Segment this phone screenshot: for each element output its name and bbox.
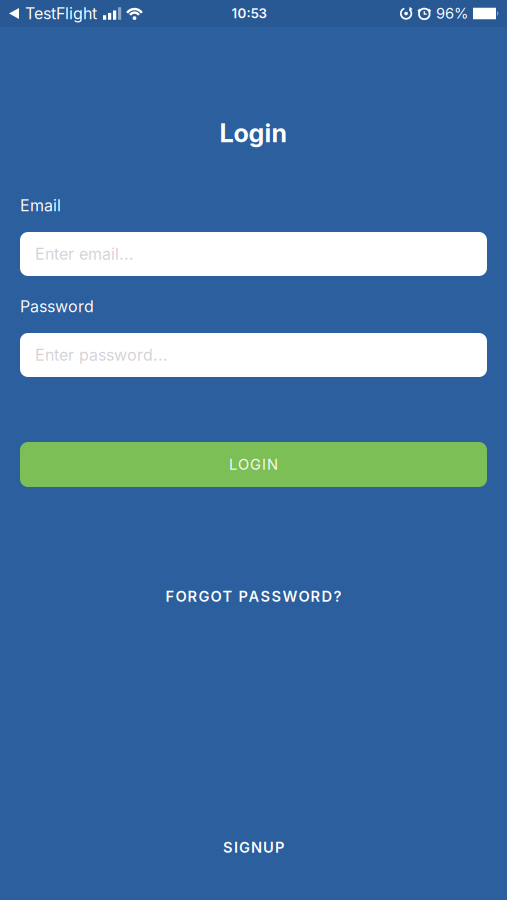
button[interactable]: L O G I N	[20, 442, 487, 487]
staticText: TestFlight	[25, 4, 97, 23]
staticText: Email	[20, 196, 61, 215]
staticText: F O R G O T P A S S W O R D ?	[165, 588, 341, 605]
button[interactable]: Enter email...	[20, 232, 487, 276]
button[interactable]: Enter password...	[20, 333, 487, 377]
staticText: S I G N U P	[223, 839, 284, 856]
staticText: 10:53	[231, 6, 266, 21]
button[interactable]: Back to TestFlight	[0, 4, 97, 23]
staticText: Enter password...	[35, 346, 168, 364]
staticText: Password	[20, 297, 94, 316]
button[interactable]: S I G N U P	[53, 836, 453, 858]
staticText: 96%	[436, 5, 468, 22]
staticText: Enter email...	[35, 245, 134, 263]
staticText: L O G I N	[229, 456, 278, 473]
button[interactable]: F O R G O T P A S S W O R D ?	[53, 585, 453, 607]
staticText: Login	[219, 118, 287, 148]
